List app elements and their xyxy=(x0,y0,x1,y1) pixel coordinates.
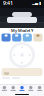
button[interactable]: Shortcut xyxy=(1,33,11,41)
staticText: 9:41 xyxy=(3,0,13,7)
button[interactable]: Tab 3 xyxy=(18,86,26,91)
staticText: ▂▄ ▮ xyxy=(32,1,41,5)
button[interactable]: Tab 5 xyxy=(35,86,44,91)
button[interactable]: Shortcut xyxy=(12,33,21,41)
button[interactable]: Summary xyxy=(1,68,42,76)
button[interactable]: Shortcut xyxy=(33,33,42,41)
button[interactable]: Tab 1 xyxy=(0,86,9,91)
button[interactable]: Shortcut xyxy=(23,33,32,41)
button[interactable]: Tab 4 xyxy=(26,86,35,91)
button[interactable]: Tab 2 xyxy=(9,86,18,91)
staticText: My Model Y xyxy=(11,28,33,33)
